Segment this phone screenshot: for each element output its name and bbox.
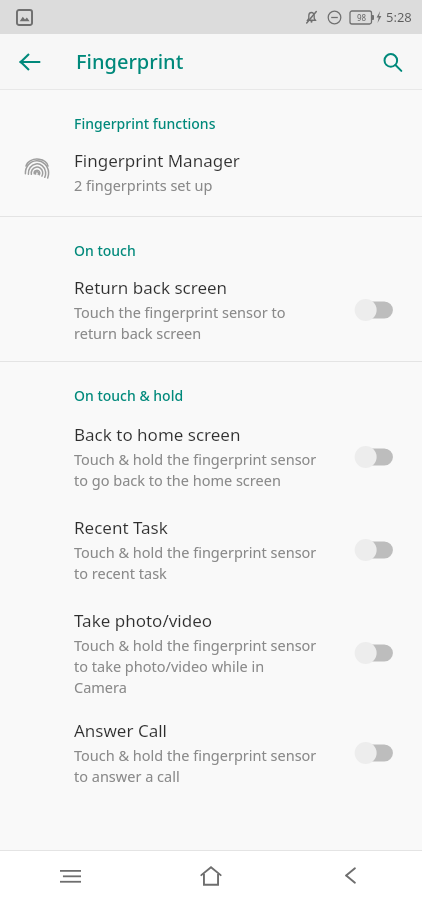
button[interactable]: Back to home screen	[0, 423, 422, 490]
staticText: Camera	[74, 677, 127, 697]
button[interactable]: Return back screen	[0, 276, 422, 343]
button[interactable]: Take photo/video	[0, 609, 422, 697]
button[interactable]: Recent Task	[0, 516, 422, 583]
staticText: Touch the fingerprint sensor to	[74, 302, 286, 322]
staticText: Fingerprint	[76, 48, 184, 75]
button[interactable]: Recent Task toggle	[348, 530, 400, 570]
staticText: Recent Task	[74, 516, 168, 539]
staticText: to answer a call	[74, 766, 180, 786]
staticText: Fingerprint functions	[74, 114, 216, 133]
button[interactable]: Answer Call	[0, 719, 422, 786]
button[interactable]: Back	[8, 40, 52, 84]
staticText: On touch & hold	[74, 386, 184, 405]
button[interactable]: Search	[370, 40, 414, 84]
button[interactable]: Back	[281, 851, 422, 900]
button[interactable]: Back to home screen toggle	[348, 437, 400, 477]
staticText: 5:28	[386, 8, 412, 26]
staticText: Answer Call	[74, 719, 167, 742]
staticText: 98	[357, 12, 367, 23]
staticText: On touch	[74, 241, 136, 260]
staticText: Return back screen	[74, 276, 228, 299]
staticText: Touch & hold the fingerprint sensor	[74, 745, 317, 765]
staticText: Touch & hold the fingerprint sensor	[74, 449, 317, 469]
button[interactable]: Home	[140, 851, 281, 900]
staticText: 2 fingerprints set up	[74, 175, 213, 195]
staticText: to go back to the home screen	[74, 470, 281, 490]
staticText: Touch & hold the fingerprint sensor	[74, 635, 317, 655]
staticText: Take photo/video	[74, 609, 213, 632]
button[interactable]: Menu	[0, 851, 140, 900]
button[interactable]: Fingerprint Manager	[0, 149, 422, 195]
staticText: return back screen	[74, 323, 202, 343]
button[interactable]: Take photo/video toggle	[348, 633, 400, 673]
button[interactable]: Answer Call toggle	[348, 733, 400, 773]
button[interactable]: Return back screen toggle	[348, 290, 400, 330]
staticText: Fingerprint Manager	[74, 149, 240, 172]
staticText: Back to home screen	[74, 423, 241, 446]
staticText: Touch & hold the fingerprint sensor	[74, 542, 317, 562]
staticText: to take photo/video while in	[74, 656, 265, 676]
staticText: to recent task	[74, 563, 167, 583]
